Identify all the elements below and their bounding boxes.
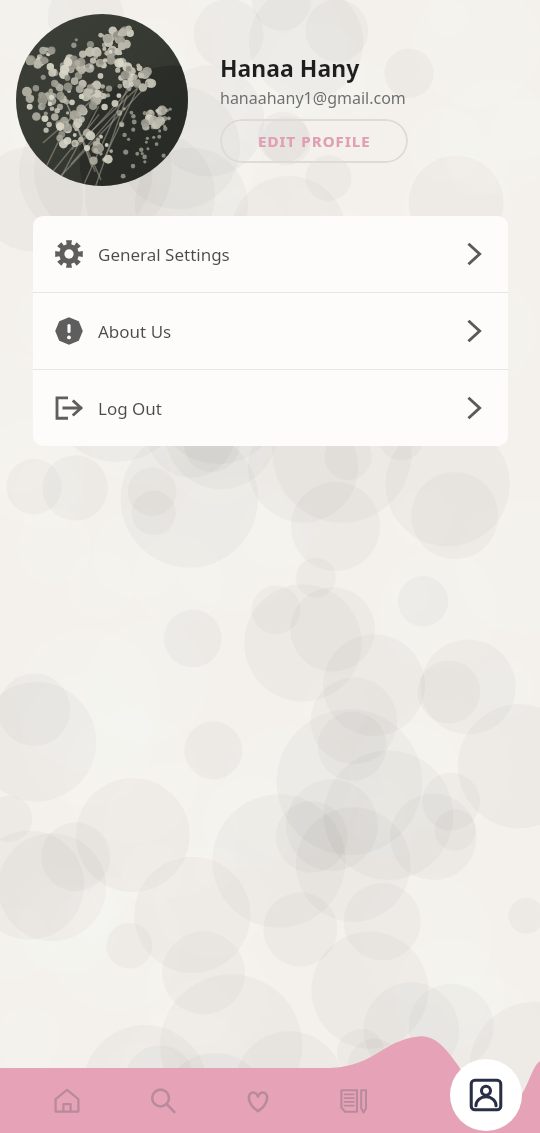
button[interactable]: Profile photo	[16, 14, 188, 186]
button[interactable]: General Settings	[33, 216, 508, 292]
staticText: Log Out	[98, 397, 460, 420]
button[interactable]: EDIT PROFILE	[220, 119, 408, 163]
staticText: Hanaa Hany	[220, 52, 360, 83]
button[interactable]: Profile	[450, 1059, 522, 1131]
staticText: About Us	[98, 320, 460, 343]
button[interactable]: Favorites	[230, 1073, 286, 1129]
button[interactable]: About Us	[33, 293, 508, 369]
staticText: EDIT PROFILE	[258, 131, 371, 151]
button[interactable]: Search	[135, 1073, 191, 1129]
button[interactable]: Notes	[326, 1073, 382, 1129]
staticText: General Settings	[98, 243, 460, 266]
staticText: hanaahany1@gmail.com	[220, 87, 406, 109]
button[interactable]: Log Out	[33, 370, 508, 446]
button[interactable]: Home	[39, 1073, 95, 1129]
